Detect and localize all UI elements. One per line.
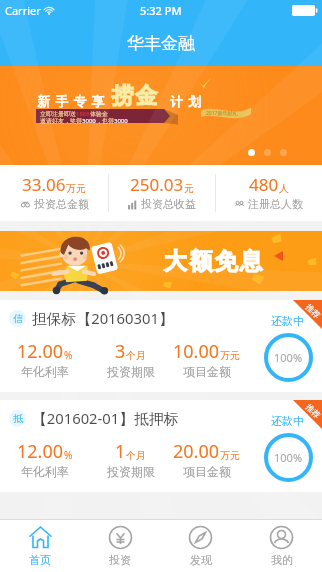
- staticText: 还款中: [271, 314, 304, 328]
- staticText: 100%: [274, 450, 303, 465]
- staticText: 2017新年献礼: [206, 110, 238, 117]
- staticText: 12.00: [17, 339, 64, 364]
- staticText: 项目金额: [183, 364, 231, 379]
- staticText: 3000: [82, 117, 96, 125]
- staticText: 3: [115, 339, 126, 364]
- staticText: 万元: [220, 449, 240, 462]
- staticText: 投资总收益: [141, 197, 196, 211]
- staticText: 人: [279, 182, 289, 195]
- staticText: 大额免息: [164, 247, 265, 276]
- staticText: 推荐: [304, 302, 322, 320]
- staticText: 5:32 PM: [140, 3, 182, 18]
- staticText: 投资期限: [107, 364, 155, 379]
- button[interactable]: 信: [0, 300, 322, 392]
- button[interactable]: 首页: [0, 520, 80, 572]
- staticText: 邀请好友，奖得: [40, 117, 82, 125]
- staticText: 首页: [29, 553, 51, 567]
- staticText: 个月: [126, 449, 146, 462]
- staticText: 1: [115, 439, 126, 464]
- staticText: %: [64, 448, 73, 462]
- staticText: %: [64, 348, 73, 362]
- staticText: 还款中: [271, 414, 304, 428]
- staticText: 担保标【20160301】: [32, 308, 174, 328]
- staticText: 元: [184, 182, 194, 195]
- staticText: 20.00: [173, 439, 220, 464]
- staticText: 12.00: [17, 439, 64, 464]
- button[interactable]: 我的: [241, 520, 322, 572]
- staticText: 个月: [126, 349, 146, 362]
- button[interactable]: 发现: [160, 520, 241, 572]
- staticText: 抵: [13, 412, 23, 425]
- staticText: 年化利率: [21, 464, 69, 479]
- staticText: 100%: [274, 350, 303, 365]
- staticText: 计划: [170, 93, 207, 109]
- staticText: 推荐: [304, 402, 322, 420]
- staticText: 【201602-01】抵押标: [32, 408, 179, 428]
- staticText: 注册总人数: [248, 197, 303, 211]
- staticText: 投资期限: [107, 464, 155, 479]
- staticText: 投资总金额: [34, 197, 89, 211]
- staticText: 项目金额: [183, 464, 231, 479]
- staticText: 捞金: [111, 82, 158, 110]
- staticText: 体验金: [90, 110, 108, 118]
- staticText: 33.06: [22, 173, 66, 196]
- staticText: 万元: [220, 349, 240, 362]
- staticText: 新手专享: [37, 93, 110, 109]
- staticText: 10.00: [173, 339, 220, 364]
- staticText: 年化利率: [21, 364, 69, 379]
- staticText: Carrier: [5, 3, 41, 18]
- button[interactable]: 投资: [80, 520, 160, 572]
- staticText: 发现: [190, 553, 212, 567]
- staticText: 480: [249, 173, 279, 196]
- staticText: 投资: [109, 553, 131, 567]
- staticText: 我的: [271, 553, 293, 567]
- staticText: 华丰金融: [127, 33, 195, 54]
- staticText: 3000: [114, 117, 128, 125]
- button[interactable]: 抵: [0, 400, 322, 492]
- staticText: 1888: [76, 110, 90, 118]
- staticText: 信: [13, 312, 23, 325]
- staticText: 立即注册即送: [40, 110, 76, 118]
- staticText: ，也得: [96, 117, 114, 125]
- staticText: 250.03: [130, 173, 184, 196]
- staticText: 万元: [66, 182, 86, 195]
